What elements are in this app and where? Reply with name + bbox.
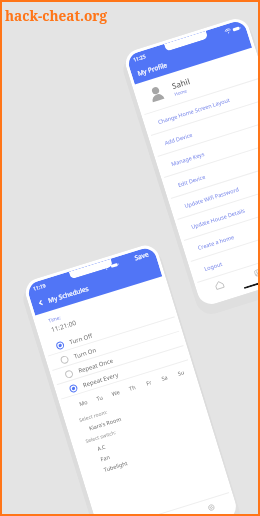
staticText: Logout bbox=[203, 260, 223, 272]
staticText: Su bbox=[177, 368, 185, 377]
staticText: Change Home Screen Layout bbox=[157, 96, 231, 125]
button[interactable]: Repeat Every bbox=[57, 346, 188, 400]
staticText: 11:25 bbox=[132, 53, 147, 64]
staticText: Mo bbox=[78, 398, 89, 407]
button[interactable]: Save bbox=[133, 246, 156, 262]
staticText: Th bbox=[128, 383, 137, 392]
button[interactable]: Fr bbox=[138, 374, 159, 391]
staticText: 11:19 bbox=[32, 282, 47, 293]
button[interactable]: Settings bbox=[187, 493, 234, 516]
staticText: Repeat Once bbox=[77, 357, 114, 375]
staticText: Fan bbox=[100, 453, 111, 462]
button[interactable]: Create a home bbox=[184, 203, 260, 261]
button[interactable]: Back bbox=[37, 298, 46, 307]
button[interactable]: Home bbox=[197, 271, 241, 299]
button[interactable]: Update House Details bbox=[177, 182, 260, 240]
staticText: Save bbox=[133, 249, 150, 262]
staticText: hack-cheat.org bbox=[5, 6, 107, 25]
staticText: My Schedules bbox=[47, 284, 90, 305]
staticText: Kiara's Room bbox=[88, 415, 122, 431]
staticText: 11:21:00 bbox=[50, 318, 77, 334]
staticText: Fr bbox=[145, 378, 153, 387]
button[interactable]: Mo bbox=[74, 394, 94, 411]
button[interactable]: Edit Device bbox=[164, 140, 260, 198]
button[interactable]: Repeat Once bbox=[52, 332, 184, 385]
staticText: A.C bbox=[96, 443, 107, 452]
staticText: Tubelight bbox=[103, 459, 129, 473]
staticText: Update House Details bbox=[190, 206, 247, 230]
button[interactable]: Add Device bbox=[151, 98, 260, 156]
staticText: Sahil bbox=[170, 75, 192, 91]
staticText: Time: bbox=[47, 314, 62, 325]
staticText: Select room: bbox=[78, 408, 109, 424]
button[interactable]: Su bbox=[171, 364, 191, 381]
button[interactable]: Tu bbox=[90, 389, 110, 406]
staticText: Create a home bbox=[197, 233, 235, 251]
button[interactable]: Th bbox=[122, 379, 142, 396]
staticText: My Profile bbox=[136, 60, 169, 78]
button[interactable]: Change Home Screen Layout bbox=[144, 77, 260, 135]
staticText: Home bbox=[174, 87, 188, 97]
button[interactable]: Manage Keys bbox=[157, 119, 260, 177]
staticText: Edit Device bbox=[177, 173, 207, 188]
staticText: Repeat Every bbox=[82, 371, 120, 389]
staticText: Sa bbox=[160, 373, 169, 382]
staticText: Manage Keys bbox=[170, 150, 206, 167]
staticText: We bbox=[111, 388, 121, 397]
button[interactable]: We bbox=[106, 384, 126, 401]
button[interactable]: Logout bbox=[190, 224, 260, 282]
button[interactable]: Gallery bbox=[236, 258, 260, 287]
button[interactable]: Turn On bbox=[48, 317, 179, 371]
staticText: Select switch: bbox=[85, 429, 117, 445]
button[interactable]: Update Wifi Password bbox=[171, 161, 260, 219]
staticText: Turn On bbox=[73, 346, 97, 361]
button[interactable]: Gallery bbox=[145, 506, 192, 516]
button[interactable]: Sa bbox=[155, 369, 175, 386]
staticText: Tu bbox=[95, 393, 104, 402]
button[interactable]: Turn Off bbox=[43, 303, 175, 357]
staticText: Add Device bbox=[164, 131, 193, 146]
staticText: Turn Off bbox=[69, 332, 94, 346]
staticText: Update Wifi Password bbox=[183, 185, 240, 209]
